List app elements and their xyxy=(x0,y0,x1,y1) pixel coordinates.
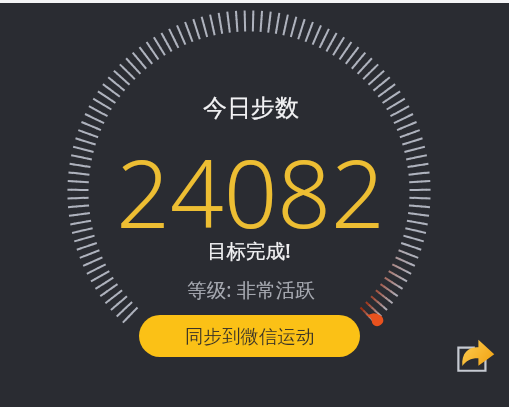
staticText: 目标完成! xyxy=(207,237,291,264)
staticText: 今日步数 xyxy=(203,93,299,123)
staticText: 同步到微信运动 xyxy=(185,325,315,348)
button[interactable]: Share xyxy=(452,334,496,378)
button[interactable]: 同步到微信运动 xyxy=(139,315,360,357)
staticText: 等级: 非常活跃 xyxy=(187,276,315,303)
staticText: 24082 xyxy=(116,128,385,256)
